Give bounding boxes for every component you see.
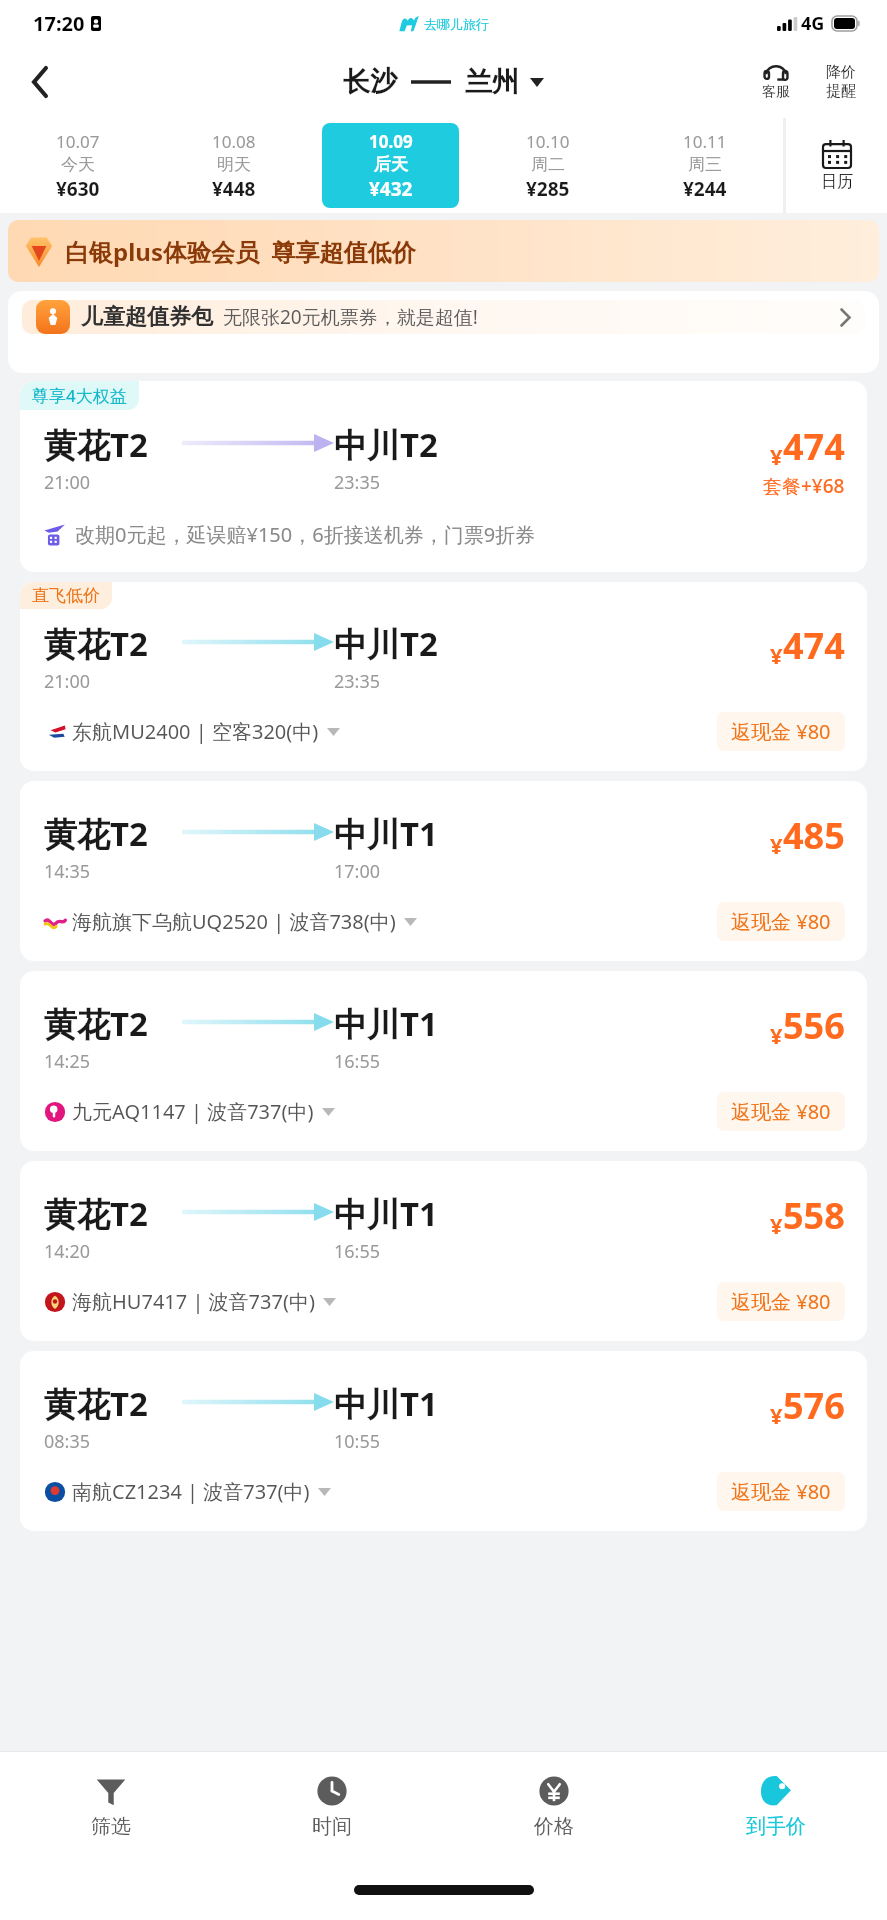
staticText: 兰州 (465, 65, 519, 99)
staticText: 10.08 (212, 130, 256, 153)
staticText: 黄花T2 (44, 811, 148, 856)
button[interactable]: 10.10 (479, 123, 616, 208)
staticText: 17:00 (334, 859, 381, 884)
staticText: 到手价 (746, 1814, 806, 1839)
staticText: ¥448 (212, 176, 256, 202)
staticText: ¥ (770, 1210, 783, 1240)
staticText: 返现金 ¥80 (731, 1478, 831, 1505)
staticText: 筛选 (91, 1814, 131, 1839)
staticText: 576 (783, 1381, 845, 1430)
staticText: 474 (783, 422, 845, 471)
staticText: 今天 (61, 154, 95, 175)
staticText: 返现金 ¥80 (731, 1288, 831, 1315)
button[interactable]: 10.07 (10, 123, 146, 208)
staticText: 九元AQ1147 | 波音737(中) (72, 1098, 314, 1125)
staticText: 4G (801, 11, 825, 36)
staticText: 23:35 (334, 470, 381, 495)
staticText: 16:55 (334, 1239, 381, 1264)
staticText: ¥ (770, 640, 783, 670)
staticText: ¥ (770, 441, 783, 471)
staticText: 485 (783, 811, 845, 860)
staticText: 儿童超值券包 (81, 303, 213, 331)
staticText: ¥630 (56, 176, 100, 202)
staticText: 长沙 (343, 65, 397, 99)
button[interactable]: 价格 (443, 1752, 665, 1860)
staticText: ¥ (770, 1400, 783, 1430)
staticText: 周三 (688, 154, 722, 175)
staticText: 558 (783, 1191, 845, 1240)
staticText: 中川T2 (334, 621, 438, 666)
staticText: 10.11 (683, 130, 727, 153)
button[interactable]: 10.11 (636, 123, 773, 208)
button[interactable]: 10.09 (322, 123, 459, 208)
staticText: 中川T1 (334, 1191, 438, 1236)
staticText: 返现金 ¥80 (731, 908, 831, 935)
staticText: ¥ (770, 1020, 783, 1050)
staticText: 黄花T2 (44, 422, 148, 467)
button[interactable]: Back (14, 56, 66, 108)
staticText: 14:35 (44, 859, 91, 884)
staticText: 改期0元起，延误赔¥150，6折接送机券，门票9折券 (75, 521, 536, 548)
button[interactable]: 日历 (786, 118, 887, 213)
staticText: 周二 (531, 154, 565, 175)
button[interactable]: 到手价 (665, 1752, 887, 1860)
staticText: 日历 (821, 172, 853, 192)
staticText: 白银plus体验会员 尊享超值低价 (65, 235, 416, 268)
staticText: 后天 (374, 154, 408, 175)
staticText: 降价 (826, 63, 856, 82)
staticText: 黄花T2 (44, 621, 148, 666)
staticText: 中川T1 (334, 1381, 438, 1426)
staticText: 提醒 (826, 82, 856, 101)
staticText: 套餐+¥68 (763, 473, 845, 499)
button[interactable]: 降价 (813, 63, 869, 101)
staticText: 16:55 (334, 1049, 381, 1074)
staticText: 21:00 (44, 470, 91, 495)
staticText: 返现金 ¥80 (731, 718, 831, 745)
staticText: 10.10 (526, 130, 570, 153)
staticText: 17:20 (33, 10, 85, 37)
staticText: 黄花T2 (44, 1001, 148, 1046)
staticText: 无限张20元机票券，就是超值! (223, 304, 478, 330)
button[interactable]: 黄花T2 (20, 971, 867, 1151)
staticText: 明天 (217, 154, 251, 175)
staticText: 中川T2 (334, 422, 438, 467)
staticText: 556 (783, 1001, 845, 1050)
button[interactable]: 黄花T2 (20, 1161, 867, 1341)
button[interactable]: 尊享4大权益 (20, 381, 867, 572)
staticText: ¥285 (526, 176, 570, 202)
staticText: 23:35 (334, 669, 381, 694)
staticText: ¥432 (369, 176, 413, 202)
staticText: 21:00 (44, 669, 91, 694)
staticText: ¥244 (683, 176, 727, 202)
staticText: 14:20 (44, 1239, 91, 1264)
button[interactable]: 白银plus体验会员 尊享超值低价 (8, 220, 879, 282)
staticText: 08:35 (44, 1429, 91, 1454)
button[interactable]: 时间 (221, 1752, 443, 1860)
button[interactable]: 长沙 (343, 65, 544, 99)
staticText: 海航旗下乌航UQ2520 | 波音738(中) (72, 908, 396, 935)
staticText: 黄花T2 (44, 1191, 148, 1236)
staticText: 去哪儿旅行 (424, 16, 489, 32)
button[interactable]: 黄花T2 (20, 1351, 867, 1531)
staticText: 10:55 (334, 1429, 381, 1454)
staticText: 黄花T2 (44, 1381, 148, 1426)
staticText: 海航HU7417 | 波音737(中) (72, 1288, 315, 1315)
staticText: 价格 (534, 1814, 574, 1839)
staticText: 474 (783, 621, 845, 670)
staticText: 尊享4大权益 (32, 384, 127, 407)
staticText: 返现金 ¥80 (731, 1098, 831, 1125)
staticText: 14:25 (44, 1049, 91, 1074)
button[interactable]: 直飞低价 (20, 582, 867, 771)
staticText: 中川T1 (334, 1001, 438, 1046)
button[interactable]: 10.08 (166, 123, 302, 208)
button[interactable]: 筛选 (0, 1752, 221, 1860)
staticText: 中川T1 (334, 811, 438, 856)
staticText: 10.07 (56, 130, 100, 153)
staticText: 客服 (762, 83, 790, 101)
staticText: 南航CZ1234 | 波音737(中) (72, 1478, 310, 1505)
button[interactable]: 黄花T2 (20, 781, 867, 961)
staticText: 10.09 (369, 130, 413, 153)
button[interactable]: 客服 (745, 63, 807, 101)
button[interactable]: 儿童超值券包 (22, 300, 865, 334)
staticText: 时间 (312, 1814, 352, 1839)
